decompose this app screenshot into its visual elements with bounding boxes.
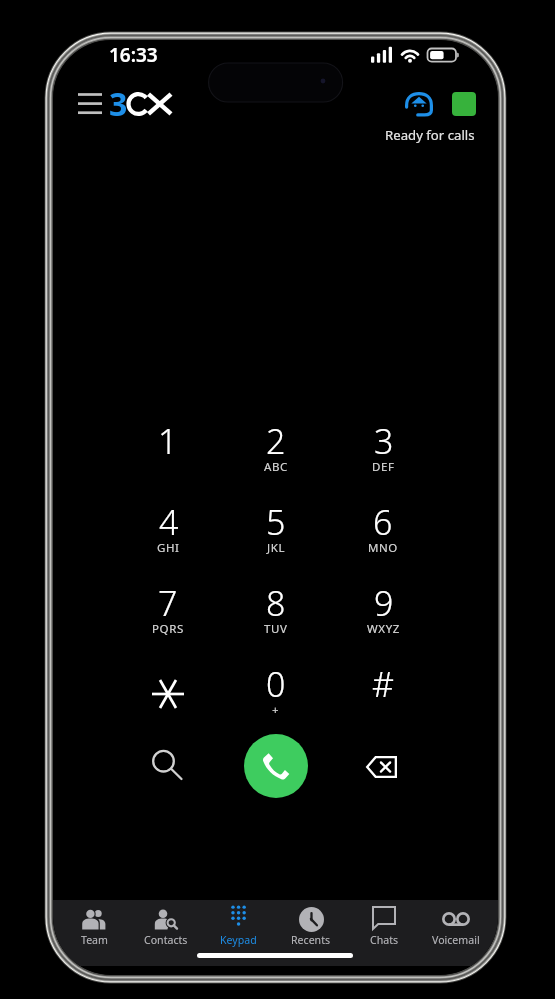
button[interactable]: # [343, 661, 423, 727]
button[interactable]: Keypad [202, 902, 274, 948]
staticText: # [372, 661, 394, 707]
button[interactable]: 6 [343, 499, 423, 565]
button[interactable]: Call [244, 734, 308, 798]
staticText: ABC [264, 459, 288, 475]
staticText: 16:33 [109, 42, 158, 68]
button[interactable]: Available [452, 92, 476, 116]
staticText: Team [81, 933, 108, 947]
staticText: WXYZ [367, 621, 400, 637]
button[interactable]: Voicemail [420, 902, 492, 948]
button[interactable]: Backspace [350, 736, 412, 798]
staticText: Ready for calls [385, 126, 475, 144]
button[interactable]: 1 [128, 418, 208, 484]
staticText: 0 [266, 661, 286, 707]
button[interactable]: Agent status [405, 92, 433, 118]
staticText: 6 [373, 499, 393, 545]
staticText: DEF [372, 459, 395, 475]
staticText: 7 [158, 580, 178, 626]
staticText: Keypad [220, 933, 257, 947]
button[interactable]: Chats [348, 902, 420, 948]
staticText: Voicemail [432, 933, 480, 947]
staticText: 8 [266, 580, 286, 626]
button[interactable]: 4 [128, 499, 208, 565]
staticText: PQRS [152, 621, 184, 637]
button[interactable]: Team [58, 902, 130, 948]
button[interactable]: 0 [236, 661, 316, 727]
staticText: 5 [266, 499, 286, 545]
staticText: + [272, 702, 280, 718]
button[interactable]: 7 [128, 580, 208, 646]
staticText: TUV [264, 621, 288, 637]
button[interactable]: Menu [76, 88, 104, 118]
staticText: 1 [158, 418, 178, 464]
button[interactable]: Contacts [130, 902, 202, 948]
button[interactable]: 2 [236, 418, 316, 484]
button[interactable]: Search [137, 735, 199, 797]
staticText: Recents [291, 933, 331, 947]
staticText: 3 [374, 418, 394, 464]
staticText: 3 [109, 82, 128, 126]
button[interactable]: 8 [236, 580, 316, 646]
staticText: JKL [267, 540, 286, 556]
staticText: 9 [374, 580, 394, 626]
button[interactable]: 5 [236, 499, 316, 565]
staticText: Contacts [144, 933, 188, 947]
button[interactable] [143, 669, 193, 719]
button[interactable]: Recents [275, 902, 347, 948]
button[interactable]: 3 [343, 418, 423, 484]
staticText: MNO [368, 540, 398, 556]
staticText: 2 [266, 418, 286, 464]
button[interactable]: 9 [343, 580, 423, 646]
staticText: 4 [159, 499, 179, 545]
staticText: GHI [157, 540, 180, 556]
staticText: Chats [370, 933, 399, 947]
